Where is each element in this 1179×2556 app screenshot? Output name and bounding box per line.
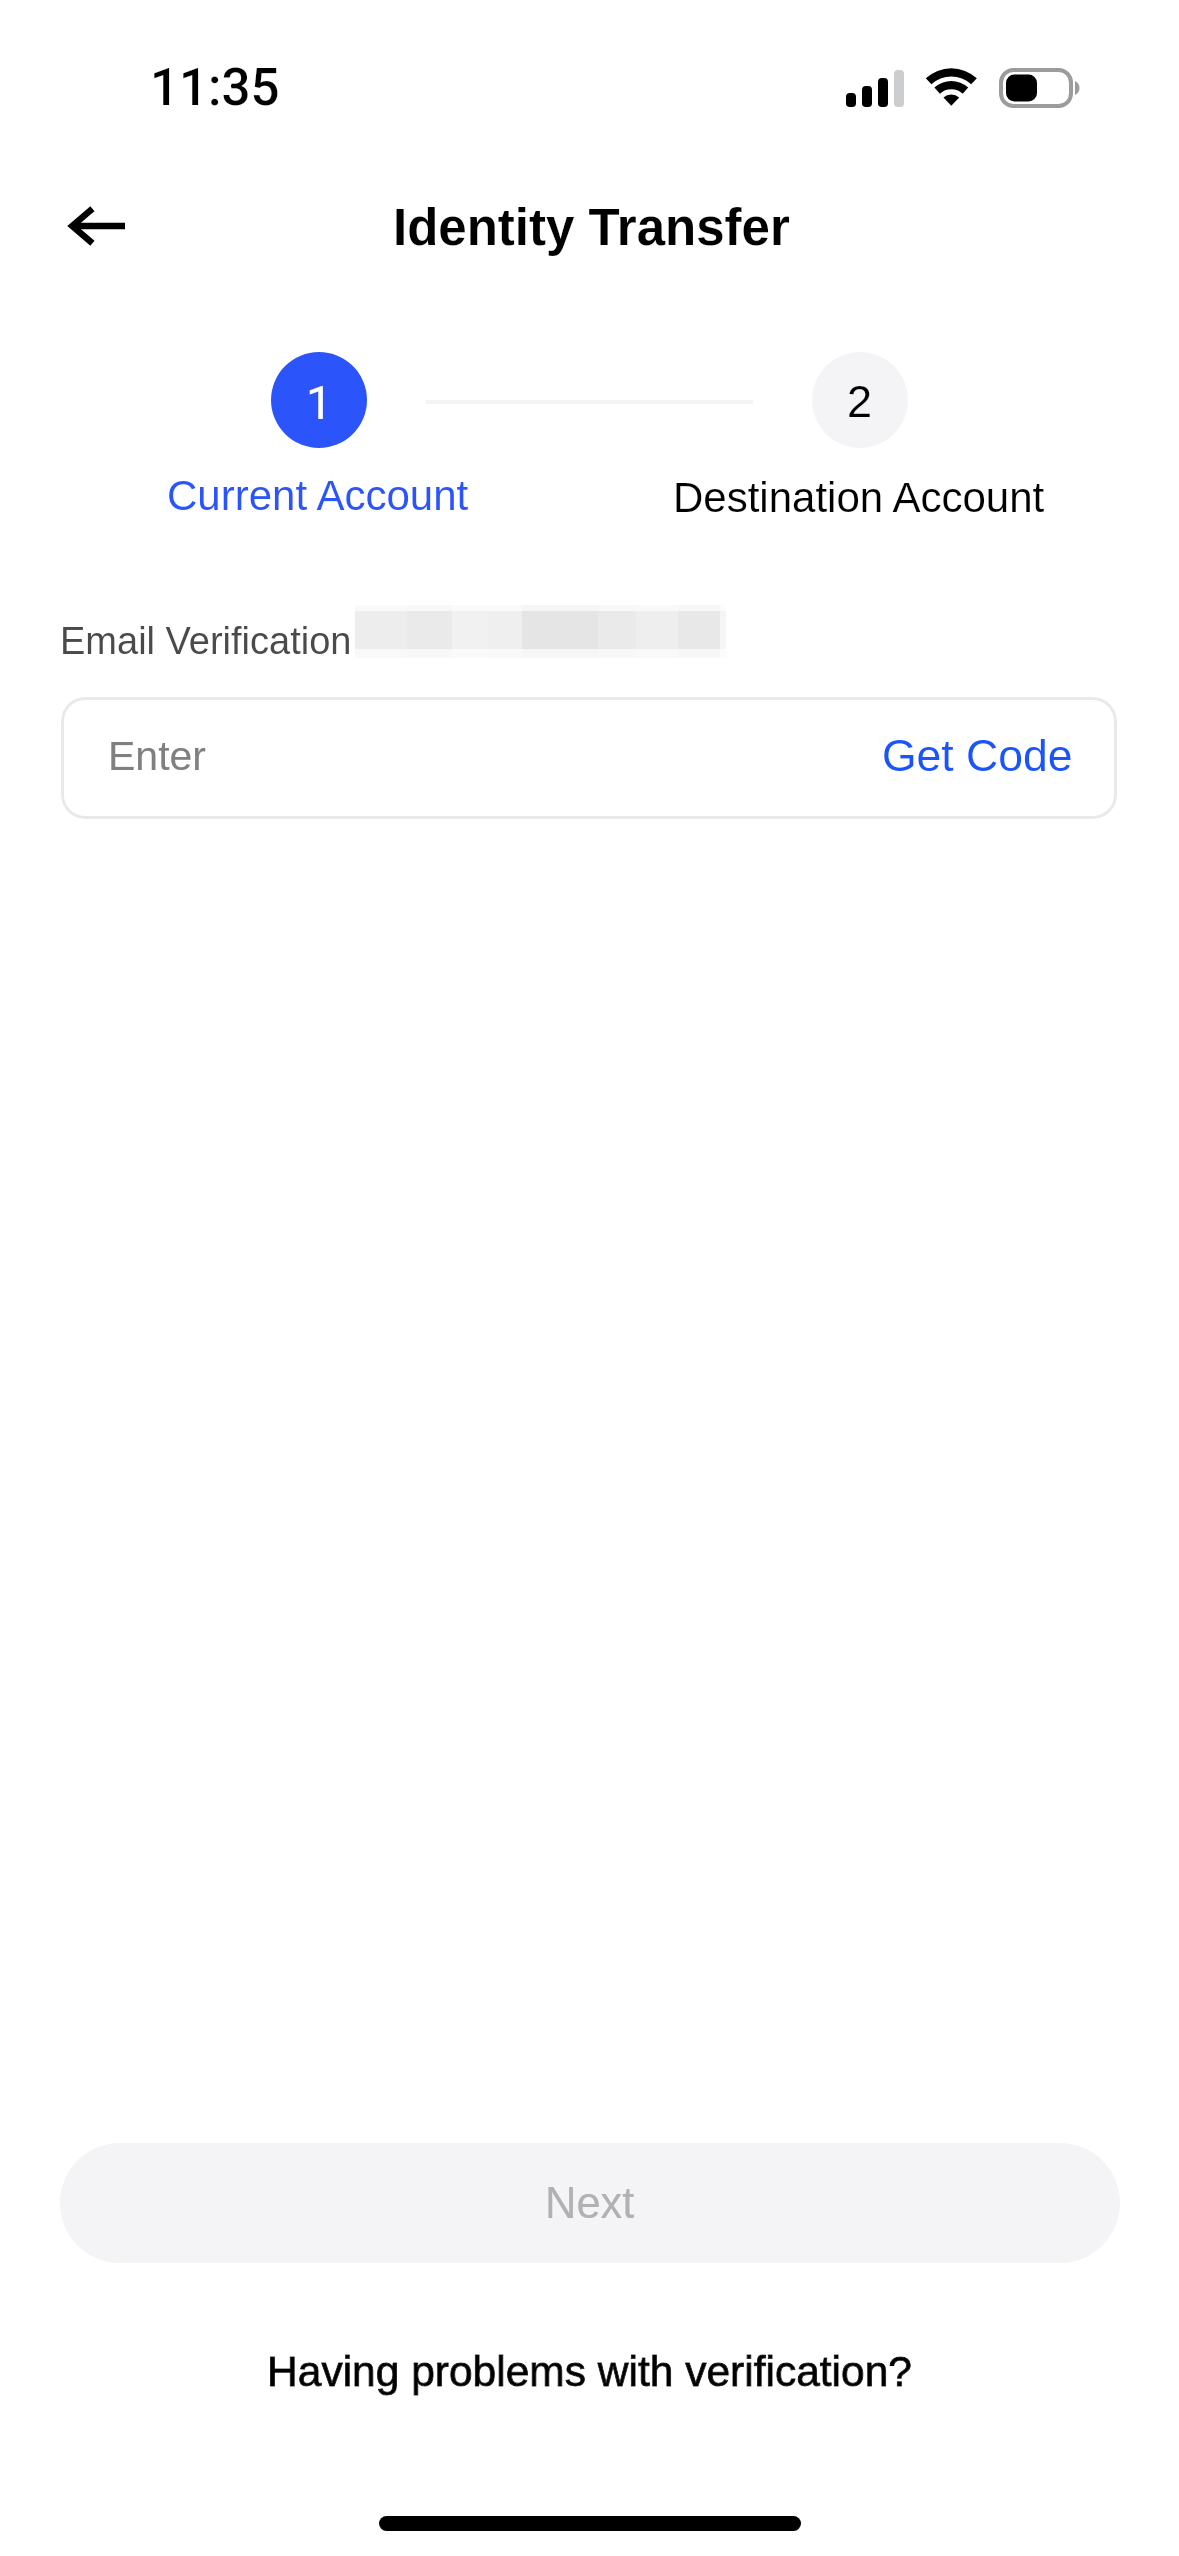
staticText: Having problems with verification? (267, 2348, 912, 2395)
button[interactable]: 1 (271, 352, 367, 448)
staticText: 2 (847, 376, 873, 426)
button[interactable]: 2 (812, 352, 908, 448)
staticText: Enter (108, 733, 206, 779)
staticText: Get Code (882, 731, 1073, 781)
staticText: Destination Account (673, 474, 1045, 521)
staticText: Current Account (167, 472, 469, 519)
staticText: 11:35 (150, 58, 280, 118)
button[interactable]: Get Code (864, 719, 1091, 793)
button[interactable]: Next (60, 2143, 1120, 2263)
button[interactable]: Having problems with verification? (247, 2338, 932, 2405)
staticText: Email Verification (60, 620, 352, 662)
staticText: 1 (306, 375, 333, 430)
staticText: Identity Transfer (393, 199, 790, 256)
staticText: Having problems with verification? (267, 2348, 912, 2395)
staticText: Next (545, 2179, 635, 2228)
button[interactable]: Back (38, 180, 150, 272)
